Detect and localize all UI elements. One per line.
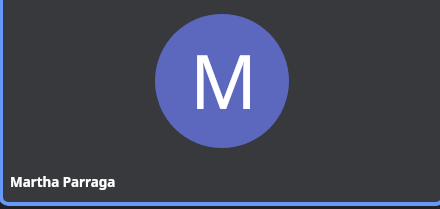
button[interactable]: Contact photo, Martha Parraga (0, 0, 440, 206)
button[interactable]: Contact photo, Martha Parraga (155, 14, 289, 148)
staticText: Martha Parraga (10, 173, 116, 191)
staticText: M (190, 30, 258, 131)
